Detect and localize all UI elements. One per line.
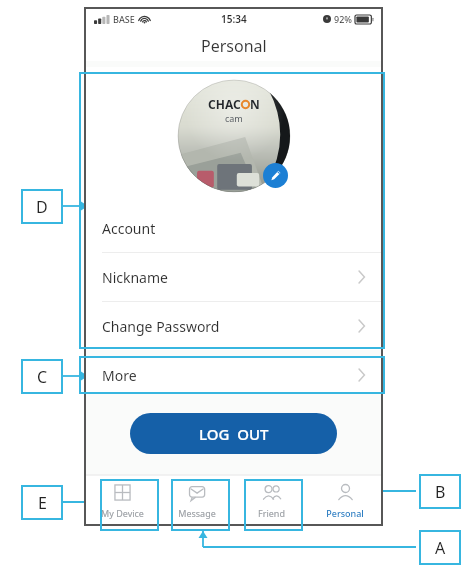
staticText: A bbox=[435, 537, 446, 559]
button[interactable]: LOG OUT bbox=[130, 413, 337, 454]
staticText: Friend bbox=[258, 507, 285, 519]
button[interactable]: More bbox=[85, 357, 382, 393]
button[interactable]: Edit profile photo bbox=[263, 163, 288, 188]
staticText: Personal bbox=[201, 35, 267, 57]
staticText: cam bbox=[225, 112, 243, 124]
staticText: More bbox=[102, 366, 137, 385]
staticText: Account bbox=[102, 219, 156, 238]
button[interactable]: Nickname bbox=[85, 253, 382, 301]
staticText: Change Password bbox=[102, 317, 220, 336]
staticText: 92% bbox=[334, 13, 352, 25]
button[interactable]: My Device bbox=[85, 475, 160, 525]
staticText: N bbox=[250, 96, 260, 112]
staticText: BASE bbox=[113, 13, 135, 25]
staticText: D bbox=[36, 196, 48, 218]
staticText: E bbox=[38, 492, 47, 514]
button[interactable]: Message bbox=[160, 475, 234, 525]
staticText: B bbox=[435, 481, 446, 503]
button[interactable]: Personal bbox=[308, 475, 382, 525]
staticText: Message bbox=[178, 507, 216, 519]
button[interactable]: Account bbox=[85, 204, 382, 252]
staticText: 15:34 bbox=[221, 12, 247, 26]
staticText: LOG OUT bbox=[199, 424, 269, 444]
button[interactable]: Friend bbox=[234, 475, 308, 525]
staticText: Personal bbox=[326, 507, 364, 519]
staticText: C bbox=[37, 366, 48, 388]
button[interactable]: Change Password bbox=[85, 302, 382, 350]
staticText: CHAC bbox=[208, 96, 241, 112]
button[interactable]: Profile photo bbox=[178, 80, 290, 192]
staticText: My Device bbox=[101, 507, 144, 519]
staticText: Nickname bbox=[102, 268, 168, 287]
